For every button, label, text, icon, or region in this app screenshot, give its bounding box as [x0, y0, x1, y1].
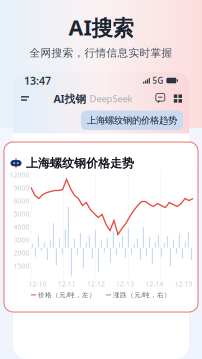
staticText: 12-14	[145, 279, 163, 288]
staticText: 价格（元/吨，左）	[38, 290, 96, 299]
staticText: AI搜索	[68, 13, 133, 41]
staticText: 1500	[13, 261, 29, 270]
staticText: 13:47	[24, 73, 51, 88]
staticText: 12-11	[58, 279, 76, 288]
staticText: 12-10	[29, 279, 47, 288]
staticText: 6000	[13, 196, 29, 205]
staticText: 12-13	[116, 279, 134, 288]
button[interactable]: Menu	[18, 92, 32, 104]
staticText: 3000	[13, 235, 29, 244]
staticText: 上海螺纹钢的价格趋势	[87, 114, 177, 126]
staticText: 全网搜索，行情信息实时掌握	[29, 46, 172, 59]
button[interactable]: Conversations	[154, 91, 167, 105]
staticText: 4000	[13, 222, 29, 231]
staticText: 涨跌（元/吨，右）	[113, 290, 171, 299]
staticText: 9000	[13, 183, 29, 192]
staticText: 12-12	[87, 279, 105, 288]
staticText: AI找钢	[53, 91, 86, 106]
staticText: 2000	[13, 248, 29, 257]
staticText: 12000	[9, 170, 29, 179]
staticText: 上海螺纹钢价格走势	[26, 156, 134, 170]
staticText: 12-15	[174, 279, 192, 288]
staticText: DeepSeek	[89, 92, 132, 105]
button[interactable]: Apps	[172, 92, 184, 105]
staticText: 5G	[152, 75, 163, 86]
staticText: 5000	[13, 209, 29, 218]
